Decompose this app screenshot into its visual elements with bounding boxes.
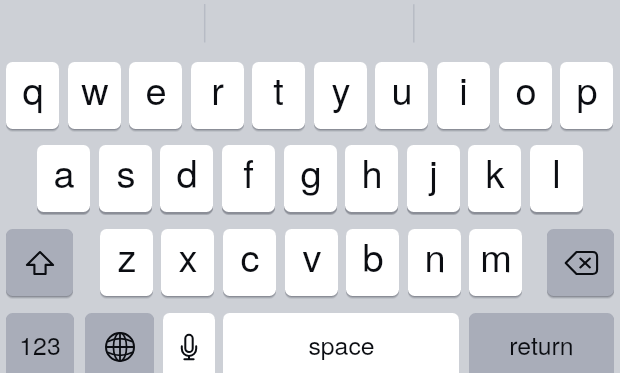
staticText: 123	[19, 327, 61, 363]
button[interactable]: Backspace	[547, 229, 614, 296]
staticText: p	[576, 62, 598, 115]
button[interactable]: Next keyboard	[85, 313, 154, 373]
button[interactable]: return	[469, 313, 614, 373]
staticText: g	[300, 145, 322, 198]
button[interactable]: Dictation	[163, 313, 215, 373]
staticText: o	[515, 62, 537, 115]
button[interactable]: z	[100, 229, 153, 296]
button[interactable]: space	[223, 313, 459, 373]
staticText: t	[273, 62, 284, 115]
button[interactable]: j	[407, 145, 460, 212]
staticText: x	[178, 229, 198, 282]
button[interactable]: Shift	[6, 229, 73, 296]
staticText: e	[145, 62, 167, 115]
button[interactable]: r	[191, 62, 244, 129]
button[interactable]: e	[129, 62, 182, 129]
button[interactable]: o	[499, 62, 552, 129]
button[interactable]: i	[437, 62, 490, 129]
staticText: j	[429, 145, 438, 198]
button[interactable]: s	[99, 145, 152, 212]
staticText: b	[362, 229, 384, 282]
staticText: s	[116, 145, 136, 198]
staticText: k	[485, 145, 505, 198]
button[interactable]: n	[408, 229, 461, 296]
button[interactable]: k	[468, 145, 521, 212]
button[interactable]: p	[560, 62, 613, 129]
button[interactable]: q	[6, 62, 59, 129]
button[interactable]: c	[223, 229, 276, 296]
button[interactable]: u	[375, 62, 428, 129]
staticText: q	[22, 62, 44, 115]
staticText: c	[240, 229, 260, 282]
staticText: h	[361, 145, 383, 198]
staticText: l	[552, 145, 561, 198]
staticText: r	[211, 62, 224, 115]
staticText: f	[243, 145, 254, 198]
button[interactable]: m	[469, 229, 522, 296]
staticText: v	[302, 229, 322, 282]
button[interactable]: a	[37, 145, 90, 212]
button[interactable]: t	[252, 62, 305, 129]
button[interactable]: v	[285, 229, 338, 296]
button[interactable]: 123	[6, 313, 74, 373]
button[interactable]: g	[284, 145, 337, 212]
button[interactable]: w	[68, 62, 121, 129]
button[interactable]: x	[161, 229, 214, 296]
button[interactable]: y	[314, 62, 367, 129]
staticText: n	[424, 229, 446, 282]
staticText: space	[308, 327, 375, 363]
staticText: z	[117, 229, 137, 282]
button[interactable]: l	[530, 145, 583, 212]
staticText: i	[459, 62, 468, 115]
staticText: return	[509, 327, 574, 363]
staticText: a	[53, 145, 75, 198]
staticText: m	[480, 229, 512, 282]
staticText: y	[331, 62, 351, 115]
button[interactable]: d	[160, 145, 213, 212]
staticText: w	[81, 62, 109, 115]
staticText: u	[391, 62, 413, 115]
staticText: d	[176, 145, 198, 198]
button[interactable]: f	[222, 145, 275, 212]
button[interactable]: b	[346, 229, 399, 296]
button[interactable]: h	[345, 145, 398, 212]
